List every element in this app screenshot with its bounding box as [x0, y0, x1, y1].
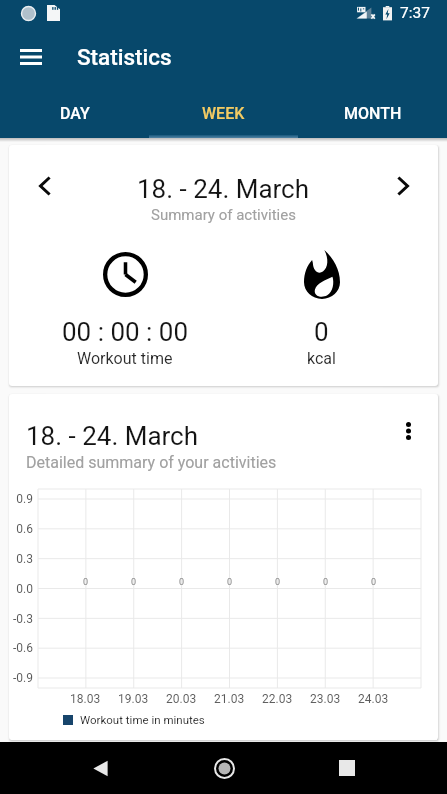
staticText: 20.03: [166, 692, 197, 706]
staticText: 0: [131, 577, 137, 588]
staticText: -0.3: [9, 612, 33, 626]
button[interactable]: Open navigation drawer: [7, 33, 55, 81]
staticText: kcal: [307, 349, 336, 368]
staticText: Detailed summary of your activities: [26, 453, 277, 472]
staticText: 0: [227, 577, 233, 588]
staticText: Summary of activities: [151, 206, 296, 224]
staticText: 0: [179, 577, 185, 588]
button[interactable]: Home: [200, 744, 248, 792]
staticText: 18. - 24. March: [137, 174, 310, 204]
staticText: Workout time: [77, 349, 173, 368]
staticText: DAY: [60, 104, 90, 123]
staticText: 18. - 24. March: [26, 421, 199, 451]
staticText: 0.0: [9, 582, 33, 596]
button[interactable]: DAY: [0, 88, 149, 138]
staticText: 18.03: [70, 692, 101, 706]
staticText: 23.03: [310, 692, 341, 706]
staticText: 0: [83, 577, 89, 588]
staticText: 0: [275, 577, 281, 588]
button[interactable]: MONTH: [298, 88, 447, 138]
staticText: 0.3: [9, 552, 33, 566]
button[interactable]: WEEK: [149, 88, 298, 138]
staticText: 21.03: [214, 692, 245, 706]
button[interactable]: Previous week: [26, 168, 62, 204]
staticText: -0.9: [9, 671, 33, 685]
staticText: 0: [371, 577, 377, 588]
staticText: 22.03: [262, 692, 293, 706]
staticText: Statistics: [77, 44, 172, 70]
staticText: 7:37: [400, 4, 430, 22]
staticText: -0.6: [9, 641, 33, 655]
staticText: Workout time in minutes: [80, 713, 205, 726]
button[interactable]: Back: [76, 744, 124, 792]
staticText: 24.03: [358, 692, 389, 706]
staticText: 00 : 00 : 00: [62, 317, 189, 347]
staticText: 0: [323, 577, 329, 588]
staticText: WEEK: [202, 104, 245, 123]
staticText: 0.9: [9, 492, 33, 506]
button[interactable]: More options: [389, 412, 427, 450]
staticText: MONTH: [344, 104, 402, 123]
button[interactable]: Recent apps: [323, 744, 371, 792]
staticText: 0.6: [9, 522, 33, 536]
button[interactable]: Next week: [385, 168, 421, 204]
staticText: 0: [314, 317, 329, 347]
staticText: 19.03: [118, 692, 149, 706]
